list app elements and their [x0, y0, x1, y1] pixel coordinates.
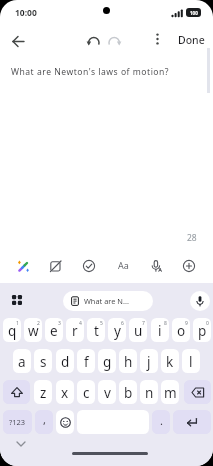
staticText: c: [83, 384, 90, 402]
staticText: 10:00: [15, 7, 37, 19]
staticText: u: [134, 322, 143, 340]
button[interactable]: v: [98, 380, 116, 404]
button[interactable]: f: [77, 349, 95, 373]
staticText: m: [164, 384, 177, 402]
staticText: r: [72, 322, 78, 340]
button[interactable]: [173, 410, 211, 434]
button[interactable]: q: [3, 318, 21, 342]
staticText: 6: [121, 320, 124, 327]
staticText: g: [103, 353, 112, 371]
staticText: i: [158, 322, 162, 340]
staticText: ,: [43, 412, 46, 427]
staticText: 28: [187, 232, 197, 244]
staticText: p: [198, 322, 207, 340]
button[interactable]: y: [108, 318, 126, 342]
button[interactable]: l: [182, 349, 200, 373]
staticText: f: [84, 353, 89, 371]
button[interactable]: [12, 295, 22, 305]
button[interactable]: d: [56, 349, 74, 373]
staticText: What are N...: [84, 296, 129, 306]
staticText: Aa: [118, 259, 129, 271]
button[interactable]: [152, 32, 164, 44]
button[interactable]: x: [56, 380, 74, 404]
button[interactable]: [3, 380, 30, 404]
button[interactable]: [15, 258, 31, 274]
button[interactable]: [181, 258, 197, 274]
button[interactable]: [48, 258, 64, 274]
button[interactable]: m: [161, 380, 179, 404]
staticText: k: [166, 353, 174, 371]
button[interactable]: b: [119, 380, 137, 404]
button[interactable]: [107, 34, 122, 49]
button[interactable]: i: [151, 318, 169, 342]
button[interactable]: z: [34, 380, 52, 404]
button[interactable]: h: [119, 349, 137, 373]
button[interactable]: What are N...: [63, 291, 153, 311]
staticText: 3: [58, 320, 61, 327]
staticText: d: [61, 353, 70, 371]
staticText: .: [160, 413, 163, 428]
button[interactable]: j: [140, 349, 158, 373]
button[interactable]: [148, 258, 164, 274]
button[interactable]: s: [34, 349, 52, 373]
staticText: a: [18, 353, 26, 371]
staticText: l: [189, 353, 193, 371]
button[interactable]: c: [77, 380, 95, 404]
staticText: v: [104, 384, 111, 402]
staticText: 1: [16, 320, 19, 327]
staticText: y: [114, 322, 121, 340]
staticText: 2: [37, 320, 40, 327]
button[interactable]: p: [193, 318, 211, 342]
staticText: h: [124, 353, 133, 371]
staticText: 7: [142, 320, 145, 327]
staticText: o: [177, 322, 186, 340]
button[interactable]: Aa: [115, 257, 131, 273]
button[interactable]: t: [87, 318, 105, 342]
staticText: e: [50, 322, 58, 340]
button[interactable]: a: [13, 349, 31, 373]
staticText: 0: [206, 320, 209, 327]
staticText: Done: [178, 33, 205, 47]
button[interactable]: u: [129, 318, 147, 342]
staticText: 100: [190, 10, 198, 16]
button[interactable]: n: [140, 380, 158, 404]
staticText: n: [145, 384, 154, 402]
button[interactable]: Done: [174, 31, 208, 48]
button[interactable]: ?123: [3, 410, 32, 434]
staticText: ?123: [9, 417, 26, 427]
staticText: q: [8, 322, 17, 340]
button[interactable]: [86, 34, 101, 49]
staticText: s: [40, 353, 47, 371]
button[interactable]: [190, 291, 210, 311]
button[interactable]: g: [98, 349, 116, 373]
staticText: 9: [185, 320, 188, 327]
staticText: 8: [164, 320, 167, 327]
button[interactable]: [184, 380, 211, 404]
button[interactable]: w: [24, 318, 42, 342]
staticText: x: [61, 384, 69, 402]
staticText: z: [40, 384, 47, 402]
button[interactable]: k: [161, 349, 179, 373]
button[interactable]: r: [66, 318, 84, 342]
staticText: t: [94, 322, 99, 340]
staticText: 4: [79, 320, 82, 327]
button[interactable]: [11, 34, 26, 49]
staticText: w: [28, 322, 39, 340]
button[interactable]: [81, 258, 97, 274]
button[interactable]: e: [45, 318, 63, 342]
button[interactable]: [56, 410, 74, 434]
button[interactable]: o: [172, 318, 190, 342]
staticText: What are Newton's laws of motion?: [11, 66, 170, 78]
button[interactable]: .: [152, 410, 170, 434]
button[interactable]: ,: [35, 410, 53, 434]
staticText: 5: [100, 320, 103, 327]
staticText: j: [147, 353, 151, 371]
staticText: b: [124, 384, 133, 402]
